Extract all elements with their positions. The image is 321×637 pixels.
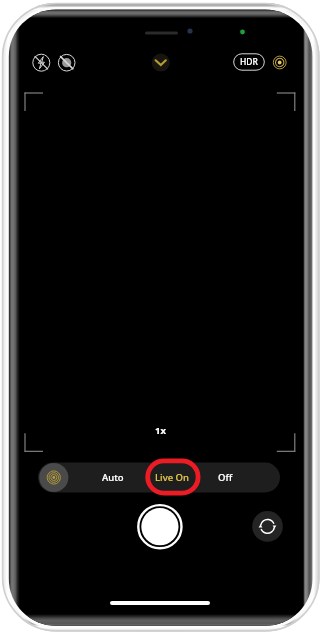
button[interactable]: Live Photo settings: [39, 463, 68, 492]
button[interactable]: Shutter: [136, 503, 182, 549]
button[interactable]: 1x: [146, 422, 174, 439]
button[interactable]: HDR: [233, 53, 264, 70]
button[interactable]: Live Photo off: [57, 53, 77, 73]
staticText: Live On: [155, 471, 189, 484]
button[interactable]: Live On: [152, 464, 192, 490]
button[interactable]: Off: [209, 464, 241, 490]
button[interactable]: Flip camera: [252, 510, 284, 542]
button[interactable]: Flash off: [31, 53, 51, 73]
button[interactable]: More options: [150, 52, 171, 73]
staticText: Auto: [102, 471, 124, 484]
button[interactable]: Live Photo: [271, 54, 288, 71]
staticText: Off: [218, 471, 233, 484]
staticText: 1x: [155, 424, 166, 437]
staticText: HDR: [240, 56, 258, 68]
button[interactable]: Auto: [94, 464, 132, 490]
